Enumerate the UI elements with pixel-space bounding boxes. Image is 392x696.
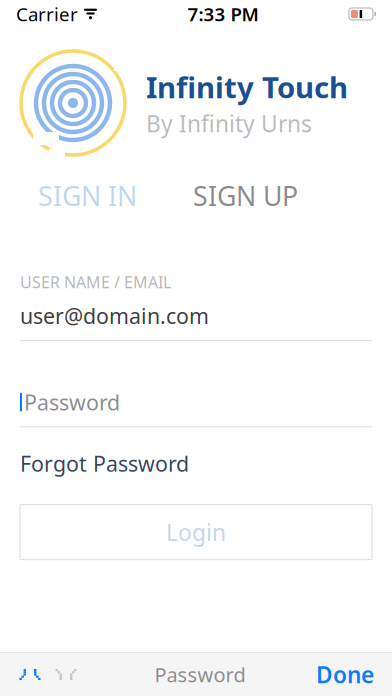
staticText: SIGN IN (38, 178, 137, 213)
button[interactable]: SIGN IN (38, 170, 137, 221)
staticText: Done (316, 659, 374, 689)
staticText: 7:33 PM (187, 2, 258, 26)
button[interactable]: user@domain.com (20, 293, 372, 341)
button[interactable]: Next field (48, 653, 84, 695)
button[interactable]: Previous field (12, 653, 48, 695)
staticText: Forgot Password (20, 449, 189, 478)
staticText: Carrier (16, 2, 78, 26)
button[interactable]: Password (20, 341, 372, 427)
staticText: Login (166, 517, 226, 547)
button[interactable]: Forgot Password (20, 443, 189, 484)
button[interactable]: Login (20, 505, 372, 560)
button[interactable]: Done (316, 651, 374, 696)
staticText: Infinity Touch (146, 67, 348, 106)
staticText: SIGN UP (193, 178, 298, 213)
staticText: By Infinity Urns (146, 108, 312, 138)
staticText: Password (154, 661, 245, 688)
staticText: Password (24, 388, 120, 416)
staticText: user@domain.com (20, 302, 209, 330)
button[interactable]: SIGN UP (193, 170, 298, 221)
staticText: USER NAME / EMAIL (20, 271, 171, 293)
